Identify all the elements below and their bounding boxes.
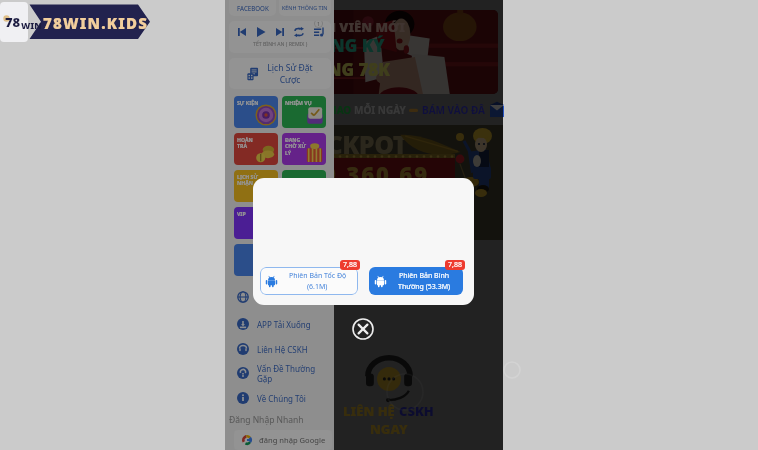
staticText: đăng nhập Google	[259, 435, 326, 445]
button[interactable]: Phiên Bản Tốc Độ	[260, 267, 358, 295]
staticText: NHIỆM VỤ	[285, 99, 312, 106]
staticText: TẶNG 78K	[306, 58, 390, 81]
staticText: Đăng Nhập Nhanh	[229, 414, 304, 426]
button[interactable]: Về Chúng Tôi	[225, 386, 334, 410]
button[interactable]: Play	[256, 27, 266, 37]
staticText: WIN	[21, 19, 42, 31]
button[interactable]: NHIỆM VỤ	[282, 96, 326, 128]
staticText: LIÊN HỆ	[343, 402, 399, 420]
staticText: LỊCH SỬ NHẬN	[237, 173, 259, 187]
staticText: Liên Hệ CSKH	[257, 344, 308, 355]
button[interactable]: SỰ KIỆN	[234, 96, 278, 128]
staticText: BÁM VÀO ĐÂ	[422, 103, 485, 117]
staticText: HOÀN TRẢ	[237, 136, 253, 150]
staticText: APP Tải Xuống	[257, 319, 311, 330]
staticText: SỰ KIỆN	[237, 99, 259, 106]
staticText: ĐĂNG KÝ	[306, 34, 385, 57]
button[interactable]: LỊCH SỬ NHẬN	[234, 170, 278, 202]
staticText: Về Chúng Tôi	[257, 393, 306, 404]
button[interactable]	[225, 285, 334, 309]
staticText: 1	[317, 21, 321, 27]
staticText: Phiên Bản Tốc Độ	[289, 271, 347, 281]
button[interactable]: APP Tải Xuống	[225, 312, 334, 336]
button[interactable]: Close dialog	[352, 318, 374, 340]
button[interactable]: HOÀN TRẢ	[234, 133, 278, 165]
staticText: Lịch Sử Đặt Cược	[265, 62, 315, 85]
button[interactable]	[282, 170, 326, 202]
staticText: VIP	[237, 210, 246, 217]
staticText: Vấn Đề Thường Gặp	[257, 363, 316, 384]
staticText: (6.1M)	[307, 282, 328, 292]
button[interactable]	[234, 244, 278, 276]
button[interactable]: Liên Hệ CSKH	[225, 337, 334, 361]
button[interactable]: ĐANG CHỜ XỬ LÝ	[282, 133, 326, 165]
button[interactable]: Repeat	[294, 27, 304, 37]
staticText: ÊN VIÊN MỚI	[318, 18, 405, 36]
staticText: 78	[5, 13, 21, 31]
staticText: FACEBOOK	[237, 4, 269, 12]
staticText: TẾT BÌNH AN ( REMIX )	[253, 40, 308, 47]
staticText: 7,88	[448, 260, 462, 270]
button[interactable]: đăng nhập Google	[234, 430, 332, 450]
staticText: Phiên Bản Bình	[399, 271, 450, 281]
staticText: NGAY	[370, 420, 408, 438]
staticText: 7,88	[343, 260, 357, 270]
staticText: 78WIN.KIDS	[43, 13, 149, 33]
button[interactable]: KÊNH THÔNG TIN	[279, 0, 331, 16]
staticText: JACKPOT	[301, 127, 408, 161]
staticText: HAO	[329, 103, 354, 117]
staticText: Thường (53.3M)	[398, 282, 451, 292]
button[interactable]: Phiên Bản Bình	[369, 267, 463, 295]
button[interactable]: VIP	[234, 207, 278, 239]
staticText: CSKH	[399, 402, 434, 420]
staticText: KÊNH THÔNG TIN	[282, 4, 328, 11]
staticText: MỖI NGÀY	[354, 103, 409, 117]
button[interactable]: Next track	[276, 28, 284, 36]
button[interactable]: FACEBOOK	[229, 0, 276, 16]
button[interactable]: Vấn Đề Thường Gặp	[225, 361, 334, 385]
button[interactable]: Lịch Sử Đặt Cược	[229, 58, 331, 89]
button[interactable]: Playlist	[314, 27, 324, 37]
button[interactable]: Previous track	[238, 28, 246, 36]
staticText: 9.360.69	[323, 159, 430, 189]
staticText: ĐANG CHỜ XỬ LÝ	[285, 136, 306, 157]
